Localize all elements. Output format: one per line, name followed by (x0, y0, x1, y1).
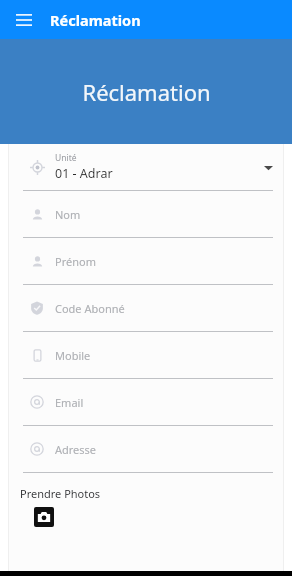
staticText: Réclamation (82, 77, 211, 107)
staticText: Adresse (55, 442, 97, 457)
staticText: Mobile (55, 348, 91, 363)
button[interactable]: Mobile (8, 332, 284, 379)
staticText: Prénom (55, 254, 96, 269)
button[interactable]: Prendre une photo (34, 507, 54, 527)
button[interactable]: Nom (8, 191, 284, 238)
staticText: Unité (55, 152, 77, 164)
button[interactable]: Adresse (8, 426, 284, 473)
button[interactable]: Open navigation menu (8, 4, 40, 36)
button[interactable]: Email (8, 379, 284, 426)
button[interactable]: Prénom (8, 238, 284, 285)
staticText: Code Abonné (55, 301, 125, 316)
staticText: 01 - Adrar (55, 165, 113, 182)
button[interactable]: Code Abonné (8, 285, 284, 332)
staticText: Email (55, 395, 84, 410)
button[interactable]: Unité (8, 144, 284, 191)
staticText: Prendre Photos (20, 486, 101, 501)
staticText: Réclamation (50, 10, 141, 30)
staticText: Nom (55, 207, 81, 222)
